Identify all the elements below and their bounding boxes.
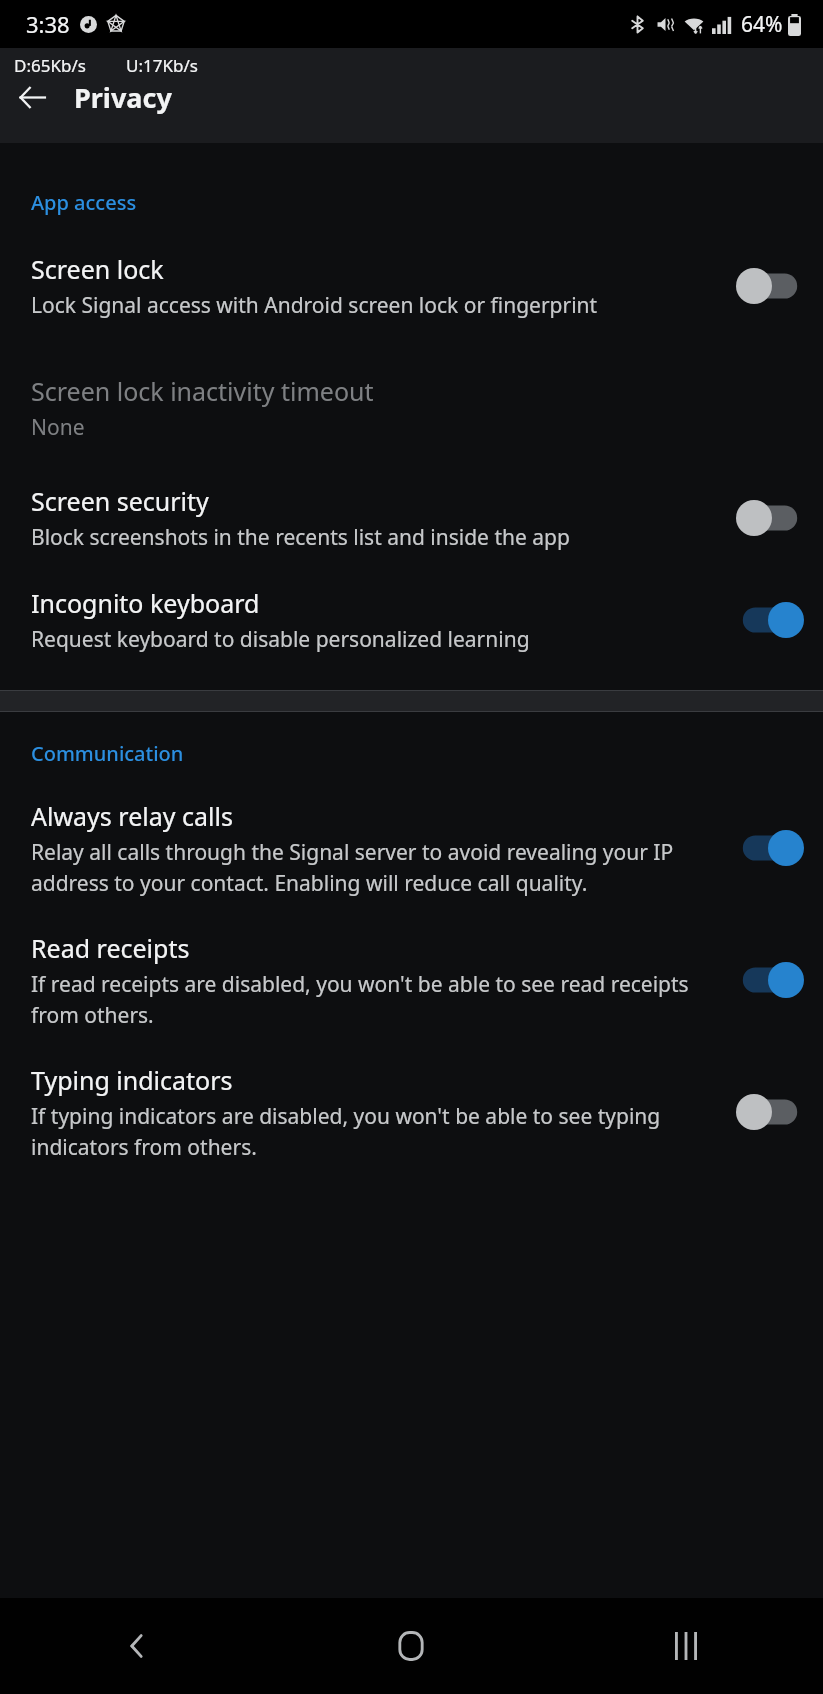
staticText: Typing indicators — [31, 1063, 233, 1097]
staticText: 3:38 — [26, 9, 70, 39]
button[interactable]: Read receipts — [736, 962, 804, 998]
button[interactable]: Always relay calls — [736, 830, 804, 866]
button[interactable]: Read receipts — [0, 923, 823, 1041]
button[interactable]: Back — [89, 1598, 185, 1694]
button[interactable]: Screen lock inactivity timeout — [0, 352, 823, 464]
staticText: If read receipts are disabled, you won't… — [31, 970, 720, 1029]
button[interactable]: Always relay calls — [0, 791, 823, 909]
staticText: 64% — [741, 10, 783, 39]
staticText: Request keyboard to disable personalized… — [31, 625, 530, 654]
button[interactable]: Incognito keyboard — [0, 578, 823, 668]
staticText: Always relay calls — [31, 799, 233, 833]
staticText: None — [31, 413, 85, 442]
staticText: U:17Kb/s — [126, 54, 198, 77]
staticText: Screen lock inactivity timeout — [31, 374, 374, 408]
button[interactable]: Home — [363, 1598, 459, 1694]
button[interactable]: Back — [0, 65, 64, 129]
staticText: Read receipts — [31, 931, 190, 965]
staticText: Relay all calls through the Signal serve… — [31, 838, 720, 897]
button[interactable]: Typing indicators — [0, 1055, 823, 1173]
staticText: If typing indicators are disabled, you w… — [31, 1102, 720, 1161]
staticText: Screen security — [31, 484, 209, 518]
button[interactable]: Screen lock — [0, 244, 823, 332]
button[interactable]: Screen lock — [736, 268, 804, 304]
button[interactable]: Incognito keyboard — [736, 602, 804, 638]
staticText: Block screenshots in the recents list an… — [31, 523, 570, 552]
staticText: Incognito keyboard — [31, 586, 260, 620]
staticText: Lock Signal access with Android screen l… — [31, 291, 598, 320]
staticText: D:65Kb/s — [14, 54, 126, 77]
staticText: App access — [31, 189, 137, 216]
staticText: Screen lock — [31, 252, 164, 286]
staticText: Communication — [31, 740, 184, 767]
button[interactable]: Screen security — [0, 476, 823, 564]
button[interactable]: Typing indicators — [736, 1094, 804, 1130]
button[interactable]: Recent apps — [638, 1598, 734, 1694]
staticText: Privacy — [74, 79, 172, 116]
button[interactable]: Screen security — [736, 500, 804, 536]
